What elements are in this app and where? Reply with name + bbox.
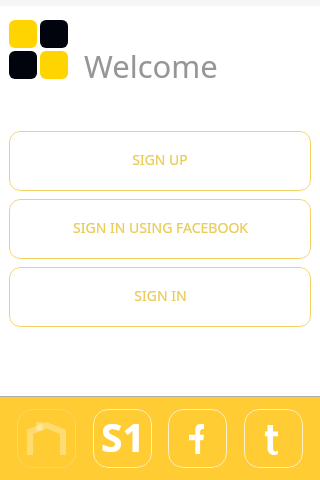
button[interactable]: SIGN IN USING FACEBOOK <box>9 199 311 259</box>
button[interactable]: Facebook <box>168 409 227 468</box>
staticText: SIGN IN USING FACEBOOK <box>73 218 248 237</box>
button[interactable]: S1 <box>93 409 152 468</box>
button[interactable]: SIGN IN <box>9 267 311 327</box>
button[interactable]: Tumblr <box>244 409 303 468</box>
staticText: SIGN IN <box>134 286 187 305</box>
button[interactable]: SIGN UP <box>9 131 311 191</box>
button[interactable]: Home <box>17 409 76 468</box>
staticText: Welcome <box>84 45 218 87</box>
staticText: SIGN UP <box>132 150 188 169</box>
staticText: S1 <box>101 410 145 463</box>
